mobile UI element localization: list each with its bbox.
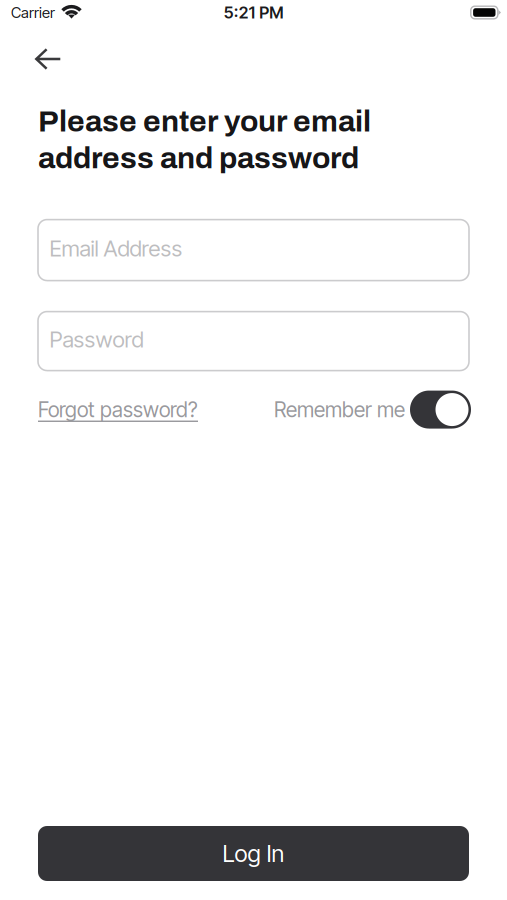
button[interactable]: Back	[22, 25, 75, 83]
button[interactable]: Remember me	[405, 391, 471, 429]
staticText: Forgot password?	[38, 397, 198, 422]
staticText: Please enter your email address and pass…	[38, 105, 371, 175]
staticText: Remember me	[274, 397, 405, 422]
staticText: Email Address	[49, 235, 182, 262]
staticText: Log In	[222, 839, 284, 868]
staticText: 5:21	[224, 3, 255, 22]
button[interactable]: Forgot password?	[38, 397, 198, 422]
staticText: Carrier	[11, 3, 55, 22]
staticText: PM	[259, 3, 283, 22]
staticText: Password	[49, 326, 143, 353]
button[interactable]: Log In	[38, 826, 469, 881]
